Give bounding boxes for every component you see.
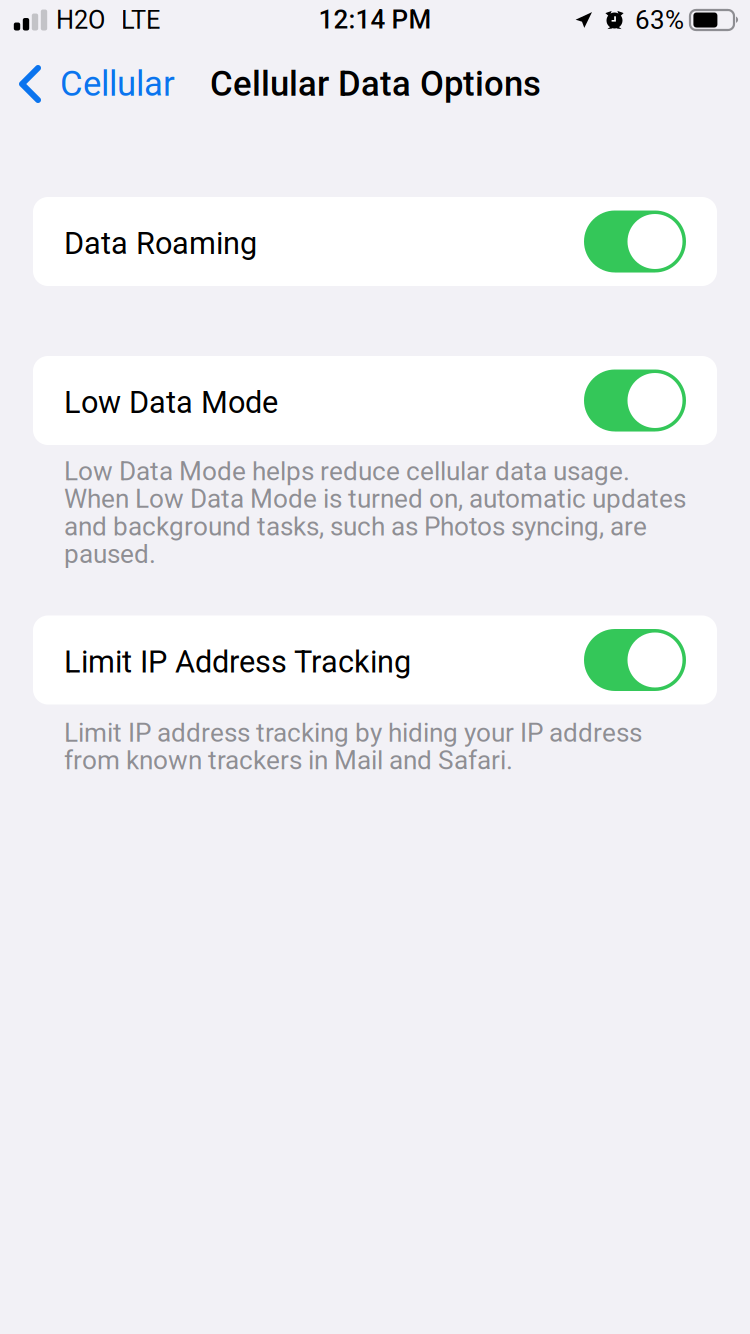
staticText: Data Roaming: [64, 225, 257, 261]
staticText: Cellular Data Options: [210, 64, 541, 104]
staticText: Low Data Mode: [64, 384, 278, 420]
staticText: 12:14 PM: [318, 4, 431, 35]
button[interactable]: Data Roaming: [33, 197, 717, 286]
staticText: Low Data Mode helps reduce cellular data…: [64, 456, 686, 569]
button[interactable]: Limit IP Address Tracking: [33, 615, 717, 704]
staticText: 63%: [635, 5, 684, 35]
staticText: LTE: [121, 5, 160, 35]
button[interactable]: Low Data Mode: [33, 356, 717, 445]
staticText: Cellular: [60, 64, 175, 104]
staticText: H2O: [56, 5, 105, 35]
staticText: Limit IP address tracking by hiding your…: [64, 717, 642, 776]
button[interactable]: Cellular: [0, 40, 189, 128]
staticText: Limit IP Address Tracking: [64, 644, 411, 680]
